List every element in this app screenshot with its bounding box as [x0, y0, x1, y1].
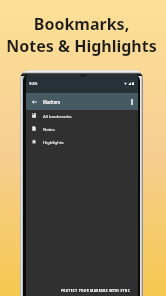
- staticText: Notes: [43, 126, 55, 132]
- staticText: All bookmarks: [43, 113, 72, 119]
- staticText: Markers: [43, 99, 61, 105]
- staticText: PROTECT YOUR MARKERS WITH SYNC: [61, 289, 131, 293]
- staticText: Bookmarks, Notes & Highlights: [6, 13, 157, 57]
- button[interactable]: Notes: [26, 123, 138, 136]
- button[interactable]: All bookmarks: [26, 110, 138, 123]
- button[interactable]: Highlights: [26, 136, 138, 149]
- button[interactable]: More options: [126, 93, 138, 110]
- staticText: 9:55: [29, 81, 38, 87]
- staticText: Highlights: [43, 139, 64, 145]
- button[interactable]: Back: [26, 93, 40, 110]
